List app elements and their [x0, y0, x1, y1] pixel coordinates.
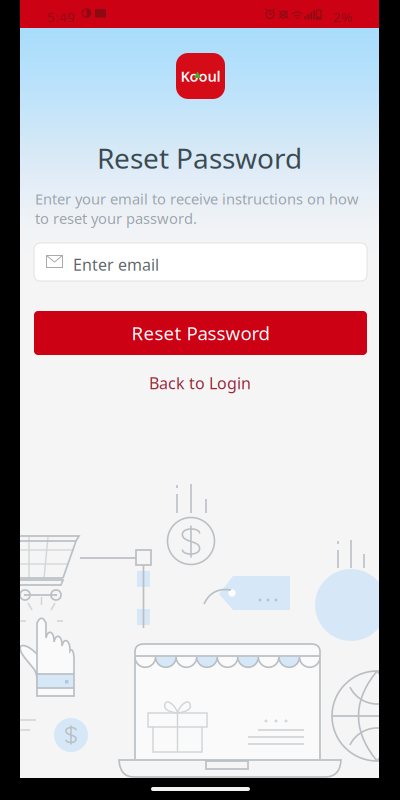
staticText: Back to Login: [149, 372, 251, 394]
button[interactable]: Enter email: [34, 243, 367, 281]
staticText: Reset Password: [131, 321, 269, 345]
button[interactable]: Reset Password: [34, 311, 367, 355]
staticText: Reset Password: [97, 139, 302, 177]
staticText: 5:49: [47, 8, 75, 26]
staticText: Kooul: [180, 66, 220, 86]
staticText: Enter email: [73, 254, 159, 275]
staticText: Enter your email to receive instructions…: [35, 189, 359, 228]
staticText: 2%: [333, 8, 352, 26]
button[interactable]: Back to Login: [130, 371, 270, 395]
